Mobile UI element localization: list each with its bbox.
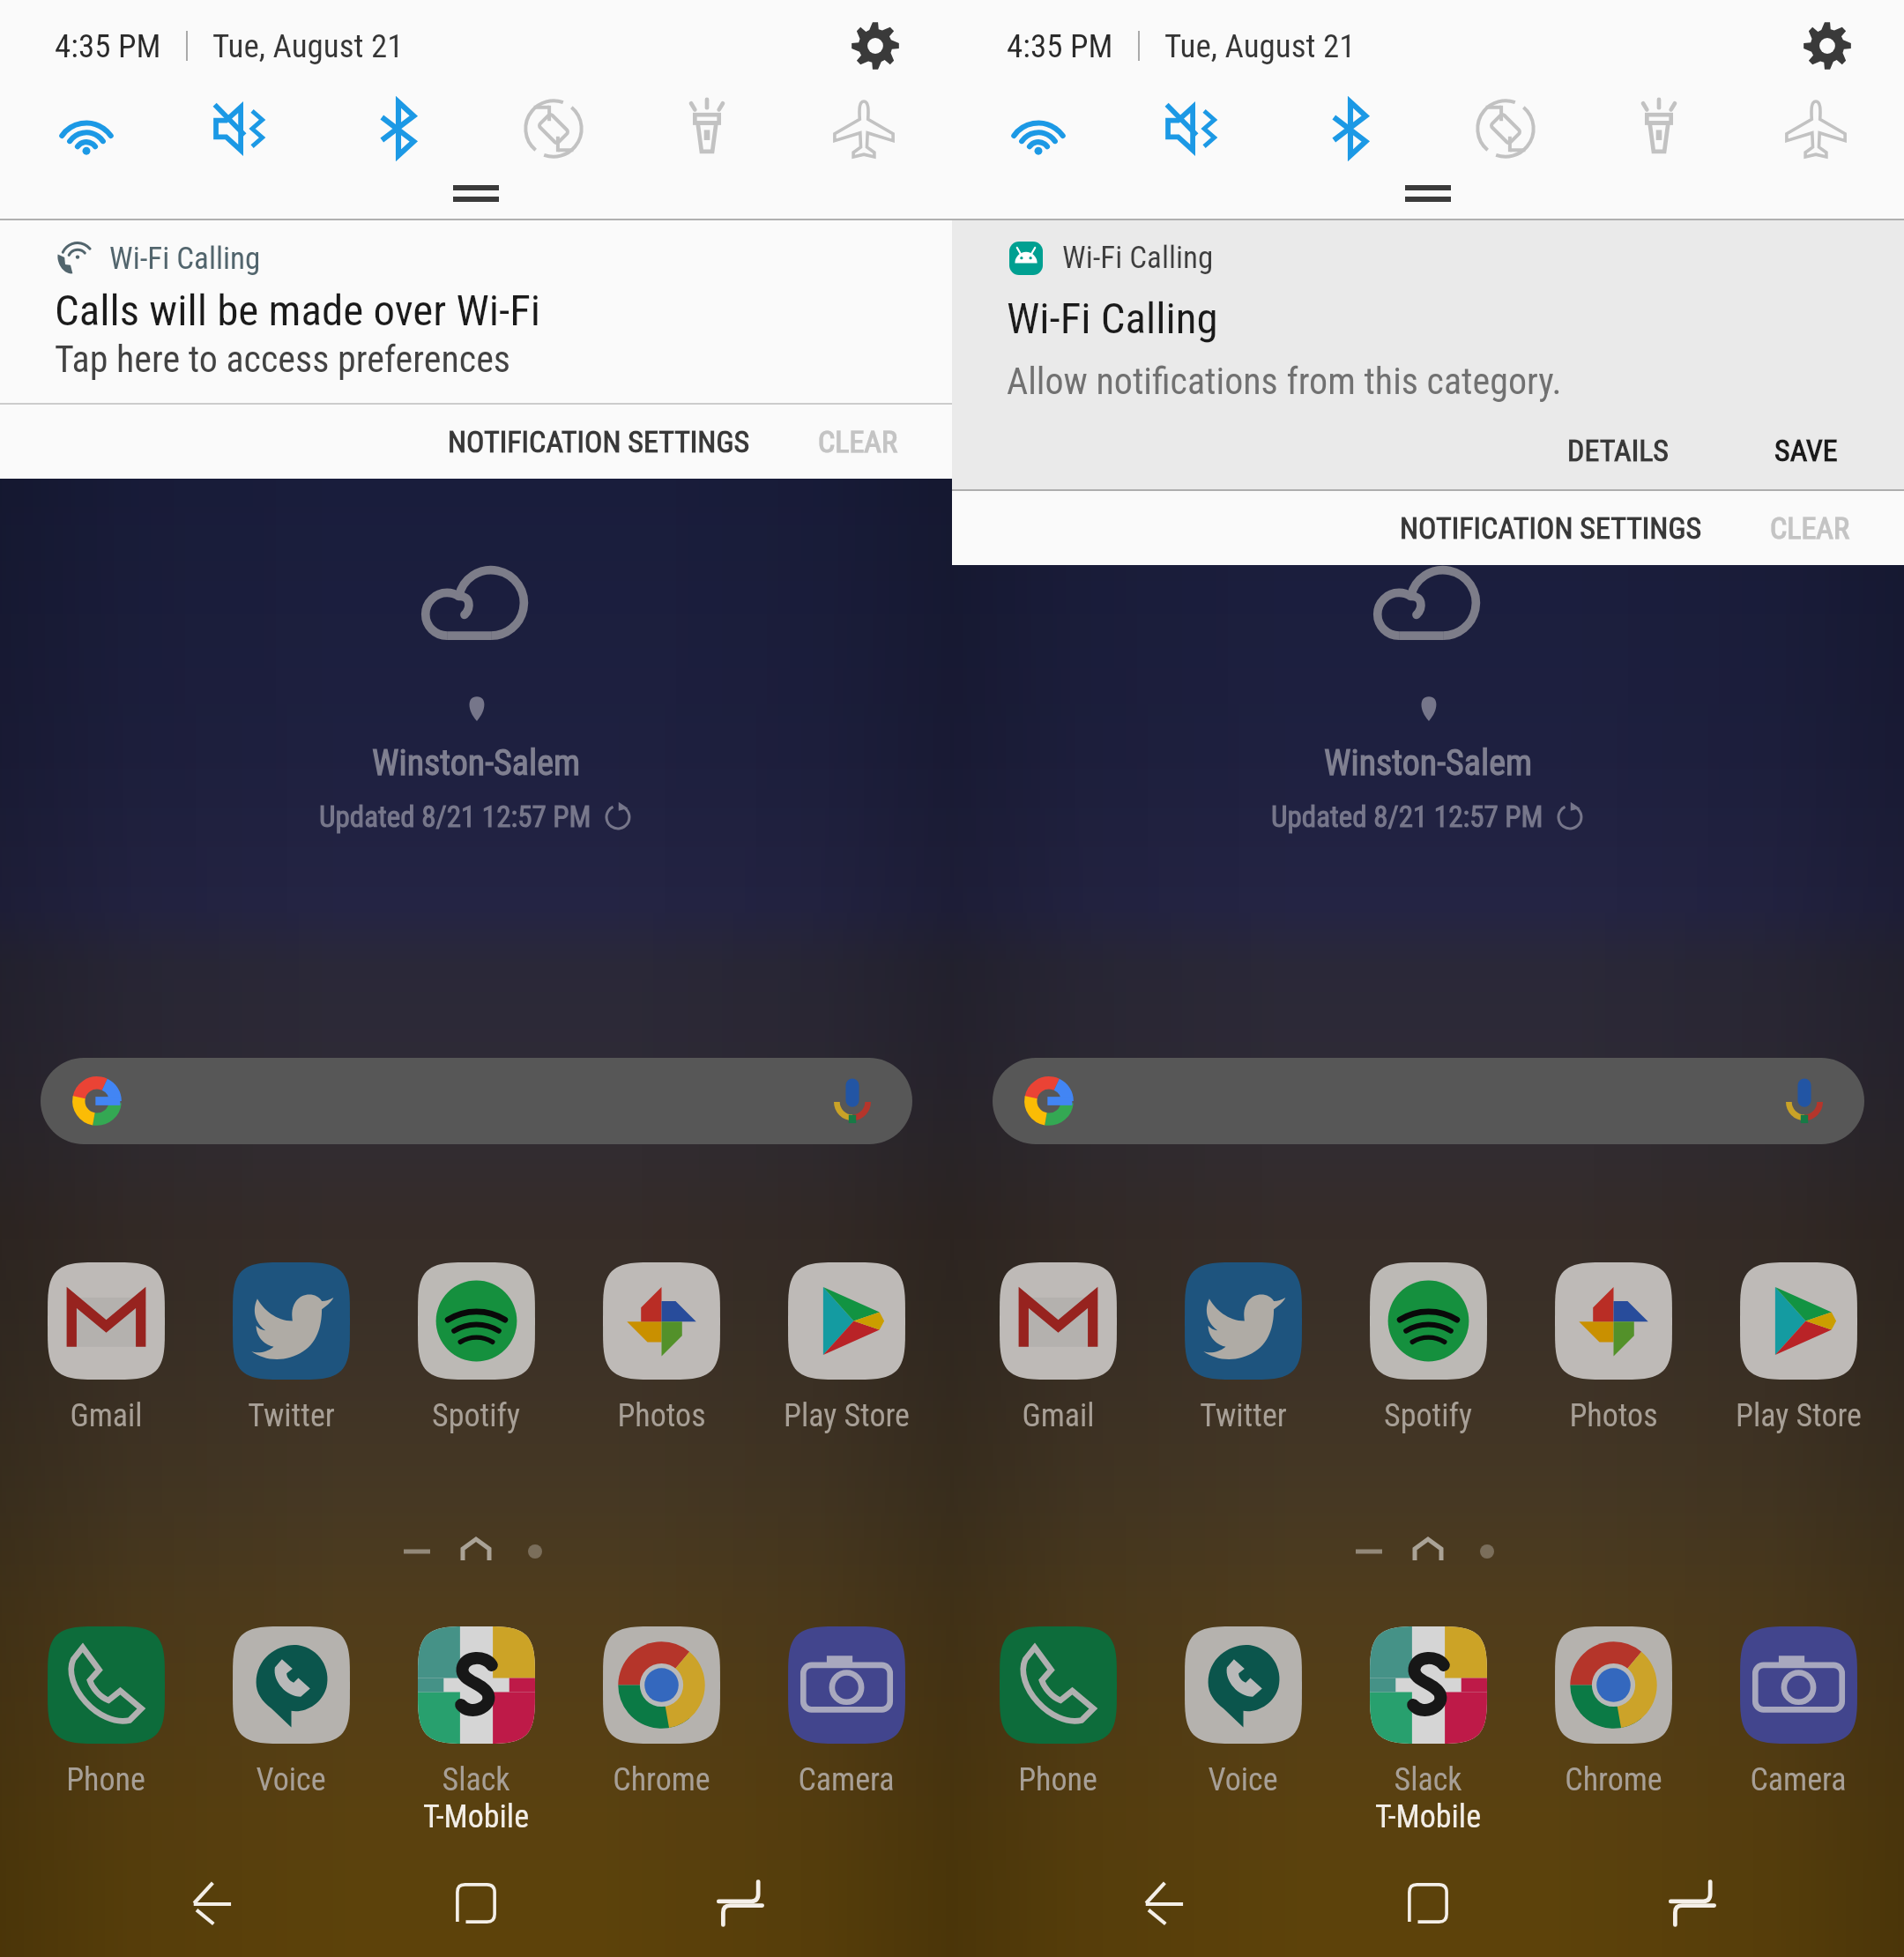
staticText: Photos [617, 1397, 706, 1434]
button[interactable]: Slack [1340, 1626, 1516, 1798]
staticText: Chrome [613, 1761, 710, 1798]
button[interactable]: Chrome [1525, 1626, 1701, 1798]
button[interactable]: Slack [388, 1626, 564, 1798]
button[interactable]: NOTIFICATION SETTINGS [1384, 491, 1718, 565]
staticText: Calls will be made over Wi-Fi [55, 286, 540, 336]
staticText: Voice [1208, 1761, 1278, 1798]
staticText: Updated 8/21 12:57 PM [1271, 800, 1543, 834]
staticText: Phone [66, 1761, 145, 1798]
staticText: Gmail [70, 1397, 143, 1434]
staticText: Photos [1569, 1397, 1658, 1434]
button[interactable]: Gmail [970, 1262, 1146, 1434]
button[interactable]: Quick setting [628, 92, 786, 166]
button[interactable]: Gmail [18, 1262, 194, 1434]
staticText: Gmail [1022, 1397, 1095, 1434]
staticText: Twitter [1200, 1397, 1287, 1434]
button[interactable]: Voice [1155, 1626, 1331, 1798]
button[interactable]: Back [106, 1847, 317, 1957]
button[interactable]: Phone [970, 1626, 1146, 1798]
button[interactable]: Photos [573, 1262, 749, 1434]
staticText: Updated 8/21 12:57 PM [319, 800, 591, 834]
staticText: Wi-Fi Calling [1007, 294, 1218, 344]
staticText: T-Mobile [423, 1798, 530, 1835]
staticText: Wi-Fi Calling [1062, 240, 1214, 276]
button[interactable]: Twitter [203, 1262, 379, 1434]
staticText: Tue, August 21 [1164, 27, 1356, 65]
staticText: Tap here to access preferences [55, 338, 510, 381]
button[interactable]: Spotify [1340, 1262, 1516, 1434]
staticText: Camera [1750, 1761, 1847, 1798]
button[interactable]: Play Store [1710, 1262, 1886, 1434]
button[interactable]: Quick setting [1737, 92, 1895, 166]
button[interactable]: Quick setting [1116, 92, 1275, 166]
button[interactable]: Google search [993, 1058, 1864, 1144]
button[interactable]: DETAILS [1551, 421, 1685, 480]
staticText: Wi-Fi Calling [109, 241, 261, 277]
staticText: Voice [256, 1761, 326, 1798]
button[interactable]: Quick setting [164, 92, 323, 166]
staticText: 4:35 PM [1007, 27, 1113, 65]
staticText: T-Mobile [1375, 1798, 1482, 1835]
staticText: NOTIFICATION SETTINGS [448, 424, 750, 459]
button[interactable]: Google search [41, 1058, 912, 1144]
staticText: Slack [442, 1761, 510, 1798]
staticText: Play Store [784, 1397, 910, 1434]
button[interactable]: Quick setting [785, 92, 943, 166]
button[interactable]: CLEAR [802, 405, 913, 479]
staticText: DETAILS [1567, 433, 1669, 468]
button[interactable]: Recent apps [635, 1847, 846, 1957]
button[interactable]: Camera [1710, 1626, 1886, 1798]
staticText: Allow notifications from this category. [1007, 360, 1562, 403]
button[interactable]: Wi-Fi Calling [0, 220, 952, 405]
button[interactable]: Voice [203, 1626, 379, 1798]
button[interactable]: Quick setting [7, 92, 166, 166]
button[interactable]: Quick setting [1580, 92, 1738, 166]
button[interactable]: Camera [758, 1626, 934, 1798]
staticText: CLEAR [1770, 510, 1849, 546]
staticText: Winston-Salem [1324, 742, 1533, 784]
staticText: Camera [798, 1761, 895, 1798]
staticText: 4:35 PM [55, 27, 161, 65]
staticText: Chrome [1565, 1761, 1662, 1798]
button[interactable]: Quick setting [474, 92, 633, 166]
button[interactable]: Home [370, 1847, 582, 1957]
button[interactable]: CLEAR [1754, 491, 1865, 565]
button[interactable]: Settings [843, 13, 908, 78]
button[interactable]: Settings [1795, 13, 1860, 78]
staticText: Spotify [1384, 1397, 1472, 1434]
button[interactable]: Back [1058, 1847, 1269, 1957]
staticText: CLEAR [818, 424, 897, 459]
staticText: NOTIFICATION SETTINGS [1400, 510, 1702, 546]
staticText: Tue, August 21 [212, 27, 404, 65]
button[interactable]: Chrome [573, 1626, 749, 1798]
button[interactable]: Quick setting [1271, 92, 1430, 166]
button[interactable]: Photos [1525, 1262, 1701, 1434]
button[interactable]: Quick setting [1426, 92, 1585, 166]
staticText: Phone [1018, 1761, 1097, 1798]
button[interactable]: Quick setting [319, 92, 478, 166]
staticText: Winston-Salem [372, 742, 581, 784]
button[interactable]: Twitter [1155, 1262, 1331, 1434]
staticText: Play Store [1736, 1397, 1862, 1434]
button[interactable]: SAVE [1759, 421, 1854, 480]
button[interactable]: Spotify [388, 1262, 564, 1434]
staticText: Spotify [432, 1397, 520, 1434]
button[interactable]: Phone [18, 1626, 194, 1798]
staticText: SAVE [1774, 433, 1838, 468]
button[interactable]: Home [1322, 1847, 1534, 1957]
button[interactable]: Play Store [758, 1262, 934, 1434]
button[interactable]: Recent apps [1587, 1847, 1798, 1957]
staticText: Twitter [248, 1397, 335, 1434]
button[interactable]: Quick setting [959, 92, 1118, 166]
button[interactable]: NOTIFICATION SETTINGS [432, 405, 766, 479]
staticText: Slack [1394, 1761, 1462, 1798]
